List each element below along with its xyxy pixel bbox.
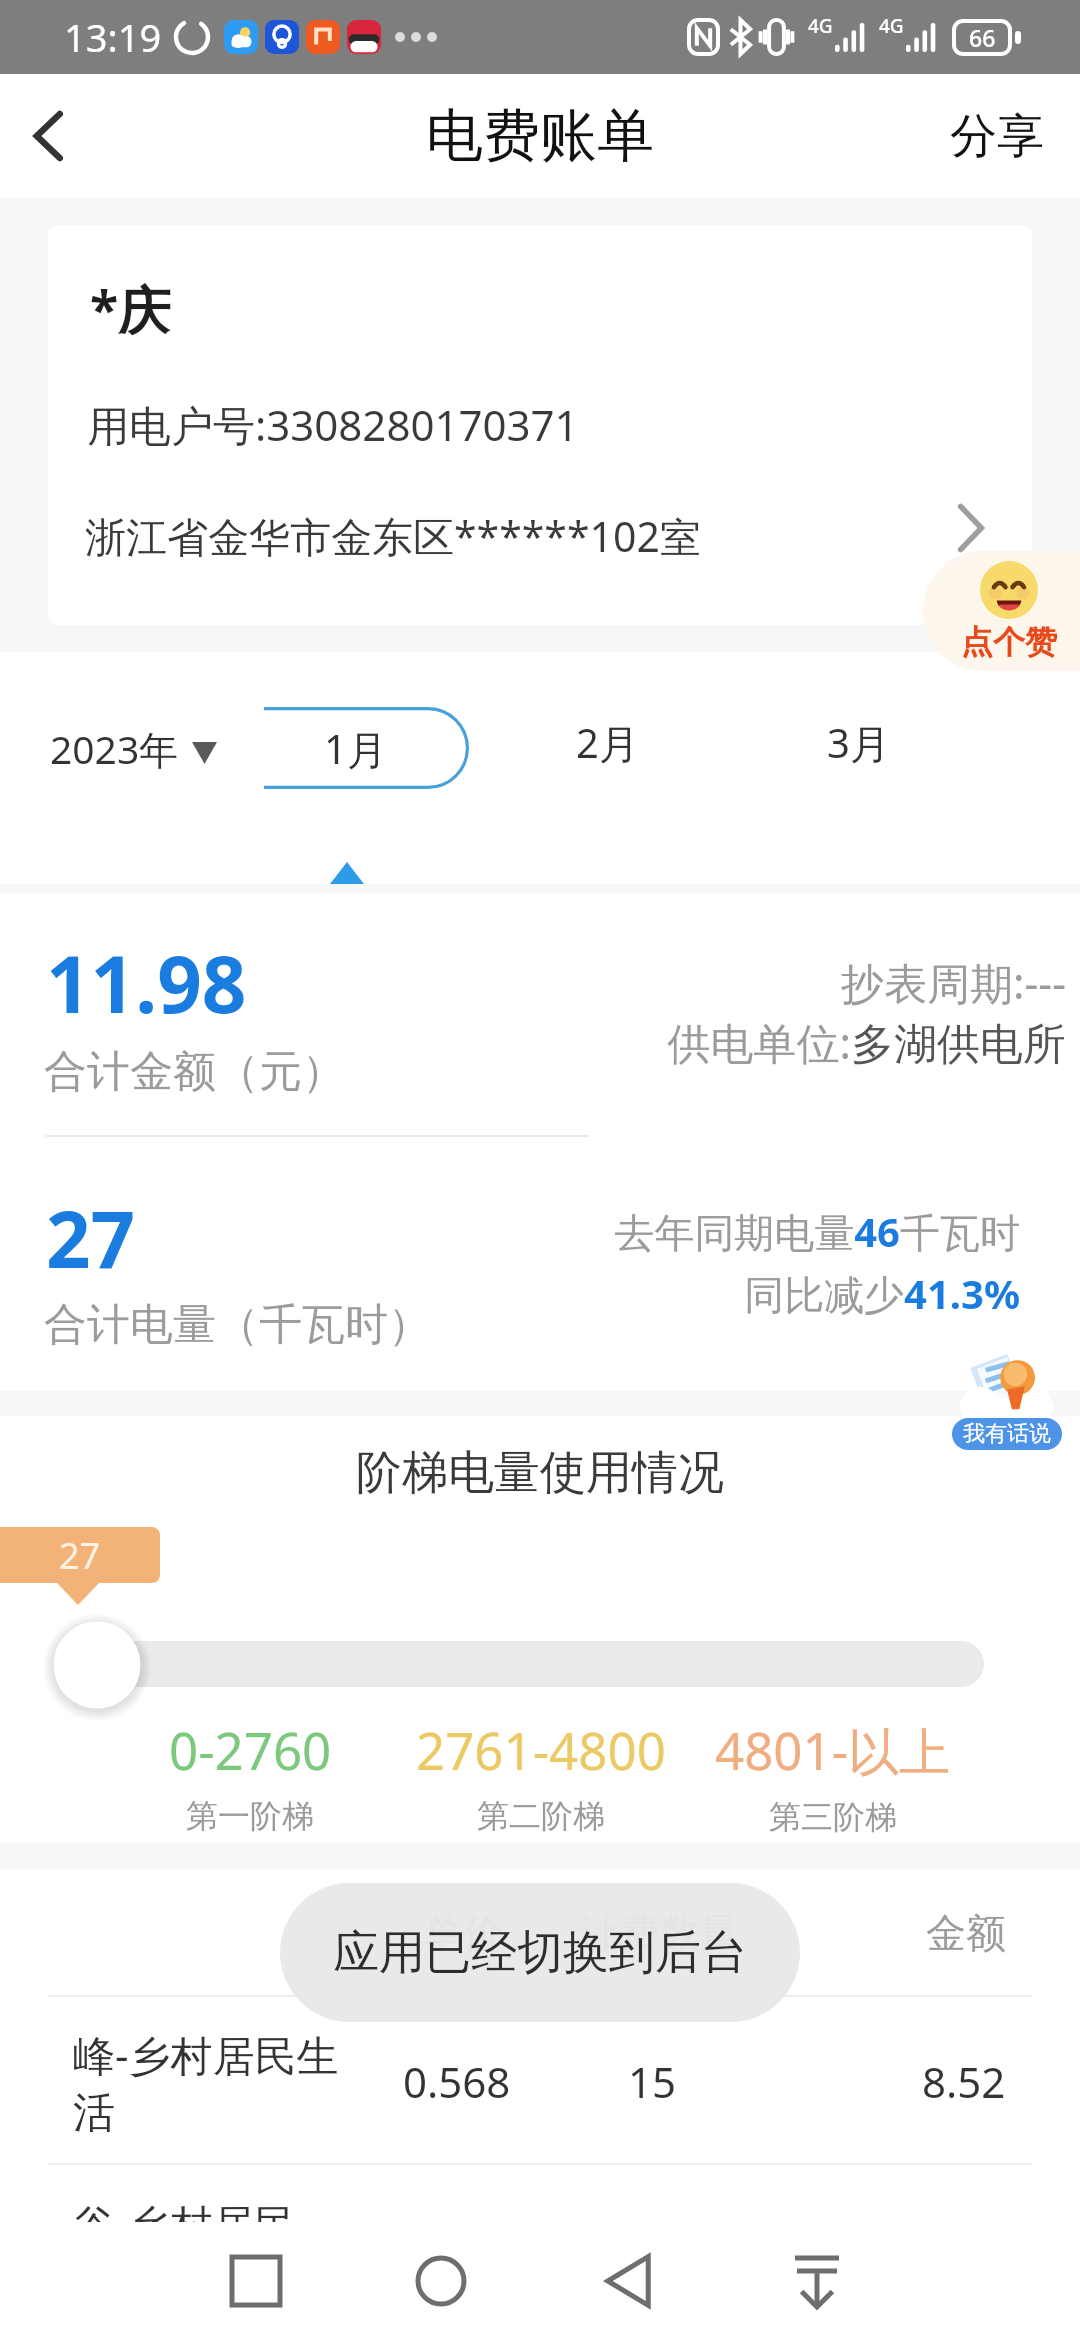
staticText: 27 <box>46 1185 136 1291</box>
staticText: 8.52 <box>922 2053 1006 2110</box>
button[interactable]: Feedback <box>951 1342 1063 1450</box>
staticText: 4801-以上 <box>715 1715 951 1785</box>
staticText: 11.98 <box>46 930 247 1036</box>
staticText: 阶梯电量使用情况 <box>0 1444 1080 1502</box>
button[interactable]: Back <box>0 74 96 198</box>
button[interactable]: 1月 <box>264 707 469 789</box>
staticText: 2023年 <box>50 722 179 775</box>
staticText: 单价 <box>423 1908 503 1958</box>
staticText: 金额 <box>926 1908 1006 1958</box>
button[interactable]: Like <box>923 551 1080 671</box>
staticText: *庆 <box>90 273 171 344</box>
staticText: 15 <box>628 2053 677 2110</box>
staticText: 0-2760 <box>169 1715 332 1784</box>
staticText: 13:19 <box>64 11 162 63</box>
staticText: 我有话说 <box>963 1420 1051 1448</box>
staticText: 27 <box>59 1531 101 1580</box>
button[interactable]: 2月 <box>576 715 639 770</box>
staticText: 2月 <box>576 715 639 770</box>
staticText: 供电单位:多湖供电所 <box>0 1013 1066 1072</box>
staticText: 3月 <box>827 715 890 770</box>
staticText: 点个赞 <box>961 622 1057 662</box>
button[interactable]: 3月 <box>827 715 890 770</box>
staticText: 合计金额（元） <box>44 1045 345 1099</box>
button[interactable]: Back <box>558 2222 698 2340</box>
staticText: 计费数量 <box>579 1908 739 1958</box>
staticText: 4G <box>808 13 833 39</box>
button[interactable]: Hide keyboard <box>747 2222 887 2340</box>
staticText: 1月 <box>324 721 387 776</box>
staticText: 去年同期电量46千瓦时 <box>0 1204 1020 1259</box>
staticText: 0.568 <box>403 2053 511 2110</box>
staticText: 66 <box>969 22 996 53</box>
staticText: 同比减少41.3% <box>0 1266 1020 1321</box>
staticText: 合计电量（千瓦时） <box>44 1298 431 1352</box>
staticText: 浙江省金华市金东区******102室 <box>85 508 701 564</box>
staticText: 抄表周期:--- <box>0 953 1066 1012</box>
staticText: 应用已经切换到后台 <box>333 1924 747 1982</box>
staticText: 电费账单 <box>426 100 654 172</box>
staticText: 峰-乡村居民生活 <box>73 2026 363 2140</box>
staticText: 4G <box>879 13 904 39</box>
staticText: 分享 <box>950 107 1044 166</box>
button[interactable]: Recents <box>186 2222 326 2340</box>
button[interactable]: *庆 <box>48 225 1032 625</box>
staticText: 谷-乡村居民生 <box>73 2195 335 2309</box>
button[interactable]: 分享 <box>910 74 1080 198</box>
staticText: 2761-4800 <box>416 1715 666 1784</box>
staticText: 用电户号:3308280170371 <box>87 396 579 453</box>
staticText: 第二阶梯 <box>477 1796 605 1836</box>
button[interactable]: Home <box>371 2222 511 2340</box>
staticText: 第三阶梯 <box>769 1797 897 1837</box>
button[interactable]: 2023年 <box>50 722 179 775</box>
staticText: 第一阶梯 <box>186 1796 314 1836</box>
